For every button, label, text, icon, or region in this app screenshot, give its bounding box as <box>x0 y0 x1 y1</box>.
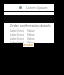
staticText: unsubscribe <box>23 43 34 47</box>
staticText: Label text <box>10 41 24 43</box>
staticText: Label text <box>10 29 24 33</box>
staticText: Label text <box>10 33 24 37</box>
button[interactable]: Action <box>23 43 34 47</box>
staticText: Value <box>27 29 35 33</box>
staticText: Value <box>27 37 35 41</box>
staticText: Label text <box>10 37 24 41</box>
staticText: Lorem Ipsum <box>26 5 48 10</box>
staticText: Value <box>27 33 35 37</box>
staticText: Value <box>27 41 35 43</box>
staticText: Order confirmation details <box>10 24 51 28</box>
